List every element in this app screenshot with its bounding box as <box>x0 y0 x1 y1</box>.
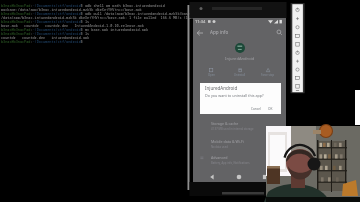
staticText: b3nac@b3nacPad:~/Documents/ctf/android$ <box>1 39 85 43</box>
staticText: 41.97 MB used in internal storage <box>211 127 254 131</box>
button[interactable]: Home <box>235 173 243 181</box>
staticText: b3nac@b3nacPad:~/Documents/ctf/android$ … <box>1 19 90 23</box>
button[interactable]: Force stop <box>254 68 282 77</box>
staticText: 11:34 <box>195 19 206 24</box>
staticText: b3nac@b3nacPad:~/Documents/ctf/android$ … <box>1 27 148 31</box>
button[interactable]: Mobile data & Wi-Fi <box>193 137 286 153</box>
staticText: package:/data/app/b3nac.injuredandroid-m… <box>1 7 142 11</box>
staticText: Open <box>208 73 215 77</box>
staticText: b3nac@b3nacPad:~/Documents/ctf/android$ … <box>1 31 90 35</box>
button[interactable]: Search <box>276 29 283 36</box>
staticText: InjuredAndroid <box>205 85 238 91</box>
staticText: Battery, App info, Notifications <box>211 161 250 165</box>
button[interactable]: App info <box>210 29 229 35</box>
staticText: b3nac@b3nacPad:~/Documents/ctf/android$ … <box>1 3 165 7</box>
button[interactable]: OK <box>268 107 273 111</box>
staticText: base.apk countdr countdr.der InjuredAndr… <box>1 23 144 27</box>
staticText: Advanced <box>211 155 228 160</box>
staticText: countdr countdr.der injuredandroid.apk <box>1 35 90 39</box>
staticText: InjuredAndroid <box>225 56 255 62</box>
staticText: Mobile data & Wi-Fi <box>211 139 244 144</box>
button[interactable]: Recents <box>261 173 269 181</box>
button[interactable]: Back <box>196 29 204 37</box>
button[interactable]: Cancel <box>251 107 261 111</box>
button[interactable]: Advanced <box>193 153 286 169</box>
staticText: Do you want to uninstall this app? <box>205 93 264 98</box>
staticText: Storage & cache <box>211 121 239 126</box>
staticText: Force stop <box>261 73 275 77</box>
staticText: No data used <box>211 145 228 149</box>
staticText: b3nac@b3nacPad:~/Documents/ctf/android$ … <box>1 11 199 15</box>
button[interactable]: Open <box>197 68 225 77</box>
staticText: /data/app/b3nac.injuredandroid-mzkSk_dke… <box>1 15 239 19</box>
button[interactable]: Back <box>208 173 216 181</box>
button[interactable]: Uninstall <box>226 68 254 77</box>
staticText: Uninstall <box>234 73 246 77</box>
button[interactable]: Storage & cache <box>193 119 286 135</box>
